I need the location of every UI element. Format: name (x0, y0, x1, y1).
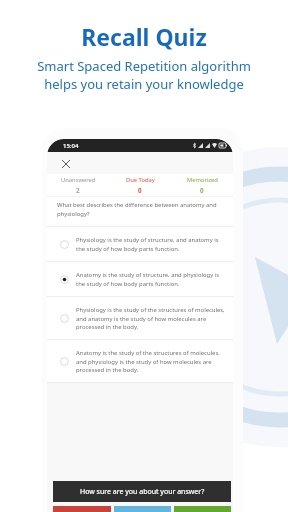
staticText: 2 (76, 186, 80, 194)
staticText: 0 (200, 186, 204, 194)
button[interactable]: How sure are you about your answer? (53, 481, 231, 502)
staticText: How sure are you about your answer? (80, 487, 205, 497)
staticText: Recall Quiz (0, 21, 288, 52)
staticText: Anatomy is the study of the structures o… (76, 349, 225, 373)
staticText: 15:04 (63, 142, 79, 150)
staticText: Smart Spaced Repetition algorithm helps … (0, 57, 288, 93)
button[interactable]: Anatomy is the study of the structures o… (47, 340, 233, 382)
staticText: Memorized (187, 176, 218, 184)
button[interactable]: Anatomy is the study of structure, and p… (47, 262, 233, 296)
staticText: 0 (138, 186, 142, 194)
button[interactable]: Memorized (171, 174, 233, 196)
staticText: Unanswered (61, 176, 96, 184)
button[interactable]: Physiology is the study of structure, an… (47, 227, 233, 261)
button[interactable]: Unanswered (47, 174, 109, 196)
staticText: Physiology is the study of structure, an… (76, 236, 225, 252)
staticText: What best describes the difference betwe… (57, 201, 221, 217)
staticText: Anatomy is the study of structure, and p… (76, 271, 225, 287)
button[interactable]: Close (58, 156, 74, 172)
button[interactable]: Physiology is the study of the structure… (47, 297, 233, 339)
staticText: Physiology is the study of the structure… (76, 306, 225, 330)
button[interactable]: Due Today (109, 174, 171, 196)
staticText: Due Today (126, 176, 155, 184)
